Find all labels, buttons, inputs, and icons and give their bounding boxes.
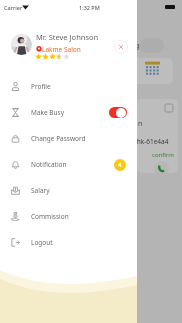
staticText: confirm (152, 151, 174, 159)
staticText: g (135, 41, 140, 51)
button[interactable]: Logout (0, 229, 137, 255)
button[interactable]: Notification (0, 151, 137, 177)
button[interactable]: Salary (0, 177, 137, 203)
staticText: Mr. Steve Johnson (36, 32, 99, 42)
button[interactable]: Profile (0, 73, 137, 99)
staticText: Change Password (31, 134, 86, 143)
button[interactable]: Close drawer (114, 40, 128, 54)
staticText: Salary (31, 186, 50, 195)
other: 4 notifications (114, 159, 126, 171)
button[interactable]: Busy toggle (109, 107, 127, 118)
staticText: Notification (31, 160, 67, 169)
staticText: Carrier (4, 4, 23, 11)
staticText: ahk-61e4a4 (137, 137, 169, 146)
staticText: Profile (31, 82, 51, 91)
staticText: 1:32 PM (79, 4, 100, 11)
button[interactable]: Make Busy (0, 99, 137, 125)
staticText: n (138, 119, 143, 129)
button[interactable]: Change Password (0, 125, 137, 151)
staticText: Lakme Salon (42, 45, 81, 54)
staticText: Logout (31, 238, 53, 247)
staticText: Make Busy (31, 108, 65, 117)
button[interactable]: Commission (0, 203, 137, 229)
staticText: Commission (31, 212, 69, 221)
staticText: 4 (118, 161, 122, 169)
